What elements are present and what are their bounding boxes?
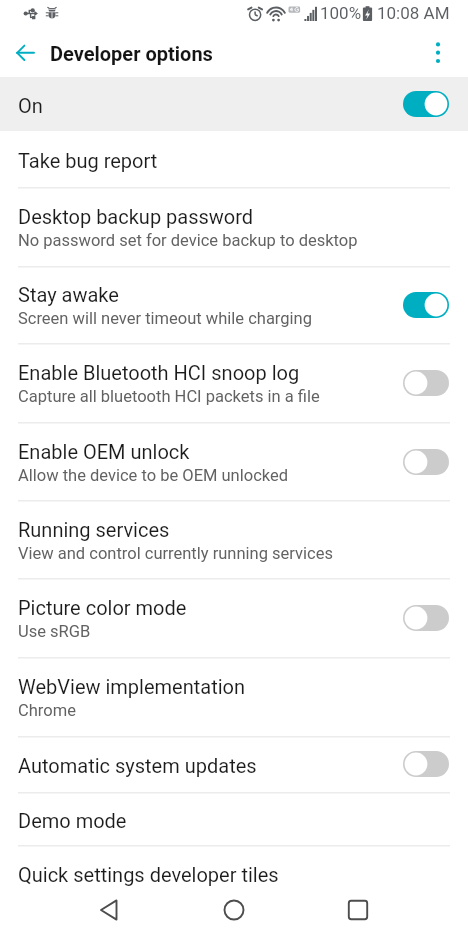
button[interactable]: Take bug report bbox=[0, 131, 468, 187]
button[interactable]: On bbox=[403, 91, 449, 117]
button[interactable]: Desktop backup password bbox=[0, 188, 468, 266]
button[interactable]: Back bbox=[79, 887, 139, 933]
button[interactable]: On bbox=[0, 77, 468, 131]
staticText: Use sRGB bbox=[18, 622, 91, 641]
button[interactable]: On bbox=[403, 292, 449, 318]
button[interactable]: Enable Bluetooth HCI snoop log bbox=[0, 344, 468, 422]
button[interactable]: Navigate up bbox=[5, 32, 49, 76]
staticText: 100% bbox=[320, 3, 362, 23]
staticText: View and control currently running servi… bbox=[18, 544, 333, 563]
staticText: Enable Bluetooth HCI snoop log bbox=[18, 361, 300, 384]
staticText: Picture color mode bbox=[18, 596, 187, 619]
staticText: Desktop backup password bbox=[18, 205, 254, 228]
staticText: Enable OEM unlock bbox=[18, 440, 190, 463]
button[interactable]: Off bbox=[403, 449, 449, 475]
button[interactable]: Picture color mode bbox=[0, 579, 468, 657]
button[interactable]: Off bbox=[403, 751, 449, 777]
button[interactable]: More options bbox=[416, 32, 460, 76]
button[interactable]: Running services bbox=[0, 501, 468, 578]
staticText: WebView implementation bbox=[18, 675, 246, 698]
button[interactable]: WebView implementation bbox=[0, 658, 468, 736]
button[interactable]: Enable OEM unlock bbox=[0, 423, 468, 500]
staticText: Chrome bbox=[18, 701, 76, 720]
staticText: On bbox=[18, 94, 43, 117]
button[interactable]: Automatic system updates bbox=[0, 737, 468, 791]
button[interactable]: Stay awake bbox=[0, 267, 468, 343]
staticText: Capture all bluetooth HCI packets in a f… bbox=[18, 387, 320, 406]
button[interactable]: Off bbox=[403, 605, 449, 631]
staticText: Automatic system updates bbox=[18, 754, 257, 777]
staticText: 10:08 AM bbox=[377, 3, 450, 23]
button[interactable]: Home bbox=[204, 887, 264, 933]
button[interactable]: Demo mode bbox=[0, 793, 468, 846]
staticText: Allow the device to be OEM unlocked bbox=[18, 466, 289, 485]
staticText: Quick settings developer tiles bbox=[18, 863, 279, 886]
button[interactable]: Quick settings developer tiles bbox=[0, 846, 468, 900]
button[interactable]: Recent apps bbox=[328, 887, 388, 933]
staticText: Take bug report bbox=[18, 149, 158, 172]
staticText: Developer options bbox=[50, 42, 213, 65]
staticText: Demo mode bbox=[18, 809, 127, 832]
staticText: No password set for device backup to des… bbox=[18, 231, 358, 250]
staticText: Stay awake bbox=[18, 283, 119, 306]
staticText: Screen will never timeout while charging bbox=[18, 309, 312, 328]
staticText: Running services bbox=[18, 518, 170, 541]
button[interactable]: Off bbox=[403, 370, 449, 396]
